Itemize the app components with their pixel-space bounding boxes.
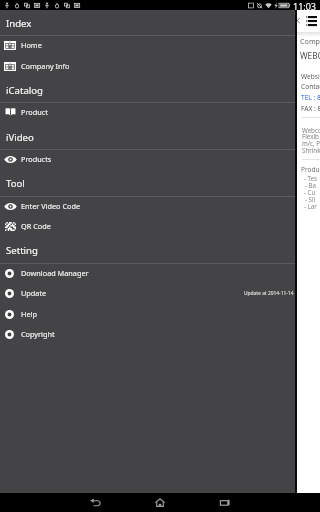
staticText: m/c, P [302,139,320,147]
button[interactable]: Products [0,149,295,169]
staticText: Help [21,309,37,319]
button[interactable]: Copyright [0,324,295,344]
button[interactable]: Company Info [0,56,295,76]
staticText: Products [21,154,52,164]
staticText: iVideo [6,131,34,144]
staticText: - Ba [305,181,320,189]
button[interactable]: Enter Video Code [0,196,295,216]
staticText: WEBCO [300,50,320,61]
staticText: Company Info [21,61,70,71]
button[interactable]: Back [85,493,105,512]
staticText: Enter Video Code [21,201,81,211]
staticText: 11:03 [293,0,317,10]
staticText: QR Code [21,221,51,231]
staticText: Shrink [302,146,320,154]
staticText: Flexib [302,132,320,140]
staticText: FAX : 8 [301,104,320,113]
button[interactable]: Help [0,304,295,324]
staticText: - Cu [304,188,320,196]
button[interactable]: Recent apps [215,493,235,512]
staticText: Index [6,17,32,30]
button[interactable]: Home [0,35,295,55]
staticText: Setting [6,244,38,257]
staticText: Tool [6,177,25,190]
button[interactable]: QR Code [0,216,295,236]
staticText: Company [300,36,320,46]
staticText: Produ [301,165,320,174]
button[interactable]: Download Manager [0,263,295,283]
staticText: - Lar [304,202,320,210]
staticText: Update at 2014-11-14 [244,290,294,297]
staticText: Update [21,288,47,298]
button[interactable]: Update [0,283,295,303]
button[interactable]: Back [295,14,302,26]
staticText: Home [21,40,42,50]
staticText: Webco [302,126,320,134]
staticText: - Tes [304,174,320,182]
button[interactable]: Home [150,493,170,512]
staticText: Website [301,72,320,81]
staticText: Download Manager [21,268,89,278]
button[interactable]: Menu [304,14,319,28]
staticText: Product [21,107,48,117]
staticText: Contact [301,82,320,91]
staticText: TEL : 8 [301,93,320,102]
button[interactable]: Product [0,102,295,122]
staticText: Copyright [21,329,55,339]
staticText: - Sli [305,195,320,203]
staticText: iCatalog [6,84,43,97]
